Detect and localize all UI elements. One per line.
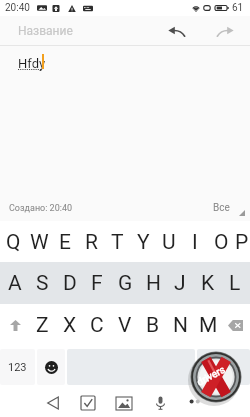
button[interactable]: Q xyxy=(0,224,26,260)
button[interactable]: K xyxy=(195,265,221,301)
button[interactable]: Insert image xyxy=(106,389,142,417)
staticText: Z xyxy=(36,313,49,338)
button[interactable]: S xyxy=(29,265,55,301)
button[interactable]: Emoji xyxy=(37,349,65,385)
staticText: M xyxy=(199,313,218,338)
button[interactable]: C xyxy=(84,307,110,343)
button[interactable]: Voice input xyxy=(142,389,178,417)
button[interactable]: E xyxy=(52,224,78,260)
button[interactable]: Z xyxy=(29,307,55,343)
button[interactable]: Enter xyxy=(197,349,250,385)
staticText: H xyxy=(146,271,161,296)
staticText: F xyxy=(91,271,103,296)
staticText: B xyxy=(146,313,160,338)
button[interactable]: B xyxy=(140,307,166,343)
staticText: C xyxy=(90,313,104,338)
staticText: Hfdy xyxy=(18,56,46,71)
staticText: O xyxy=(214,230,229,255)
button[interactable]: P xyxy=(234,224,250,260)
button[interactable]: 123 xyxy=(0,349,35,385)
button[interactable]: D xyxy=(57,265,83,301)
button[interactable]: Redo xyxy=(201,16,250,46)
button[interactable]: Checklist xyxy=(70,389,106,417)
staticText: Создано: 20:40 xyxy=(9,203,73,214)
staticText: U xyxy=(162,230,176,255)
button[interactable]: V xyxy=(112,307,138,343)
button[interactable]: Shift xyxy=(2,307,28,343)
staticText: Название xyxy=(18,24,73,38)
staticText: Q xyxy=(6,230,21,255)
button[interactable]: Undo xyxy=(152,16,201,46)
button[interactable]: X xyxy=(57,307,83,343)
staticText: J xyxy=(174,271,186,296)
staticText: W xyxy=(30,230,49,255)
staticText: R xyxy=(85,230,98,255)
staticText: Все xyxy=(213,202,230,214)
button[interactable]: N xyxy=(167,307,193,343)
staticText: A xyxy=(8,271,22,296)
staticText: drivers xyxy=(195,363,228,388)
button[interactable]: Backspace xyxy=(222,307,248,343)
button[interactable]: I xyxy=(182,224,208,260)
staticText: P xyxy=(235,230,249,255)
button[interactable]: A xyxy=(2,265,28,301)
button[interactable]: Back xyxy=(35,389,70,417)
button[interactable]: F xyxy=(84,265,110,301)
staticText: L xyxy=(229,271,241,296)
staticText: K xyxy=(201,271,215,296)
button[interactable]: G xyxy=(112,265,138,301)
staticText: G xyxy=(118,271,133,296)
button[interactable]: Space xyxy=(67,349,195,385)
button[interactable]: Все xyxy=(213,195,250,221)
button[interactable]: H xyxy=(140,265,166,301)
staticText: X xyxy=(63,313,77,338)
button[interactable]: T xyxy=(104,224,130,260)
staticText: V xyxy=(118,313,132,338)
button[interactable]: W xyxy=(26,224,52,260)
button[interactable]: O xyxy=(208,224,234,260)
staticText: D xyxy=(63,271,77,296)
button[interactable]: J xyxy=(167,265,193,301)
staticText: T xyxy=(111,230,124,255)
button[interactable]: U xyxy=(156,224,182,260)
staticText: S xyxy=(36,271,49,296)
staticText: 61 xyxy=(232,2,244,14)
staticText: I xyxy=(192,230,198,255)
staticText: Y xyxy=(137,230,150,255)
button[interactable]: Y xyxy=(130,224,156,260)
staticText: 123 xyxy=(8,361,27,374)
staticText: N xyxy=(173,313,188,338)
staticText: 20:40 xyxy=(5,2,30,14)
button[interactable]: M xyxy=(195,307,221,343)
staticText: E xyxy=(59,230,71,255)
button[interactable]: R xyxy=(78,224,104,260)
button[interactable]: L xyxy=(222,265,248,301)
